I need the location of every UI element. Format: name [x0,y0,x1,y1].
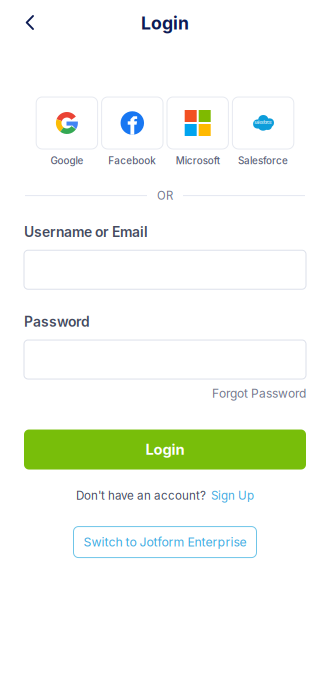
staticText: Facebook [108,155,156,167]
staticText: Microsoft [176,155,220,167]
button[interactable]: Back [0,7,48,39]
staticText: Login [141,12,189,34]
button[interactable]: Google [36,97,98,167]
staticText: Google [50,155,83,167]
staticText: Login [145,441,184,458]
staticText: Forgot Password [212,386,306,400]
button[interactable]: Forgot Password [212,386,306,400]
staticText: salesforce [254,120,271,125]
button[interactable]: Facebook [102,97,163,167]
staticText: Salesforce [238,155,288,167]
button[interactable]: Sign Up [211,488,254,502]
staticText: Switch to Jotform Enterprise [83,535,246,549]
button[interactable]: salesforce [232,97,294,167]
staticText: Username or Email [24,223,148,240]
staticText: OR [157,189,173,202]
staticText: Sign Up [211,488,254,502]
staticText: Password [24,313,90,330]
button[interactable]: Login [24,429,306,469]
staticText: Don't have an account? [76,488,206,502]
button[interactable]: Microsoft [167,97,228,167]
button[interactable]: Switch to Jotform Enterprise [73,527,256,558]
